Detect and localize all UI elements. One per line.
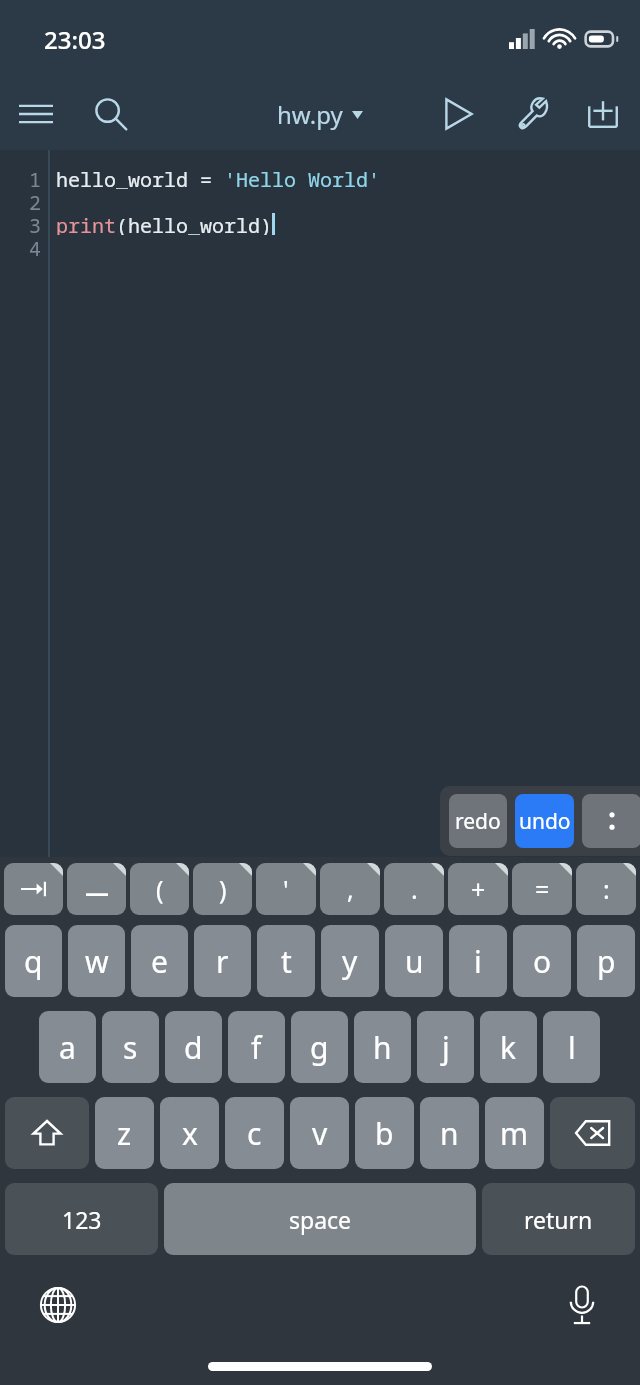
staticText: d [184,1027,203,1068]
staticText: 4 [29,235,41,258]
staticText: v [312,1113,328,1154]
button[interactable]: x [160,1097,219,1169]
staticText: + [471,872,486,906]
button[interactable]: + [448,863,508,915]
button[interactable] [4,863,63,915]
button[interactable]: y [321,925,379,997]
staticText: h [373,1027,392,1068]
staticText: : [603,872,610,906]
button[interactable]: f [228,1011,285,1083]
button[interactable]: i [449,925,507,997]
button[interactable]: Tools [502,85,560,143]
button[interactable]: c [225,1097,284,1169]
staticText: e [151,941,168,982]
staticText: q [24,941,43,982]
button[interactable]: Shift [5,1097,89,1169]
button[interactable] [67,863,126,915]
button[interactable]: undo [515,794,574,848]
button[interactable]: Run [430,85,488,143]
staticText: 1 [29,166,41,189]
button[interactable]: ( [130,863,189,915]
button[interactable]: Backspace [550,1097,635,1169]
button[interactable]: w [68,925,125,997]
staticText: 123 [62,1204,102,1235]
staticText: c [247,1113,262,1154]
staticText: undo [519,807,571,836]
button[interactable]: Change language [30,1277,86,1333]
staticText: 3 [29,212,41,235]
button[interactable]: s [102,1011,159,1083]
button[interactable]: m [485,1097,544,1169]
staticText: g [310,1027,329,1068]
button[interactable]: , [320,863,380,915]
button[interactable]: hw.py [277,98,363,131]
staticText: hw.py [277,98,343,131]
button[interactable]: Search [82,85,140,143]
staticText: f [251,1027,262,1068]
staticText: x [182,1113,198,1154]
button[interactable]: e [131,925,188,997]
staticText: b [375,1113,394,1154]
button[interactable]: r [194,925,251,997]
staticText: 23:03 [44,23,106,56]
staticText: 2 [29,189,41,212]
button[interactable]: d [165,1011,222,1083]
staticText: l [568,1027,576,1068]
button[interactable]: v [290,1097,349,1169]
staticText: p [597,941,616,982]
button[interactable]: Voice input [554,1277,610,1333]
staticText: space [289,1204,352,1235]
button[interactable]: g [291,1011,348,1083]
button[interactable]: space [164,1183,476,1255]
staticText: r [216,941,229,982]
staticText: j [442,1027,450,1068]
button[interactable]: a [39,1011,96,1083]
staticText: ) [219,872,227,906]
staticText: ( [156,872,164,906]
staticText: k [500,1027,517,1068]
button[interactable]: q [5,925,62,997]
button[interactable]: . [384,863,444,915]
staticText: , [347,872,354,906]
staticText: = [535,872,550,906]
button[interactable]: t [257,925,315,997]
staticText: ' [283,872,289,906]
staticText: o [533,941,552,982]
button[interactable]: ) [193,863,252,915]
staticText: n [440,1113,459,1154]
staticText: s [123,1027,138,1068]
button[interactable]: : [576,863,636,915]
button[interactable]: return [482,1183,635,1255]
button[interactable]: z [95,1097,154,1169]
button[interactable]: Menu [8,86,64,142]
button[interactable]: o [513,925,571,997]
button[interactable]: j [417,1011,474,1083]
staticText: hello_world = 'Hello World' [56,166,380,189]
button[interactable]: 123 [5,1183,158,1255]
button[interactable]: k [480,1011,537,1083]
button[interactable]: u [385,925,443,997]
staticText: m [500,1113,529,1154]
button[interactable]: p [577,925,635,997]
staticText: . [411,872,418,906]
button[interactable]: l [543,1011,600,1083]
staticText: redo [455,807,501,836]
button[interactable]: = [512,863,572,915]
staticText: z [117,1113,132,1154]
staticText: return [524,1204,593,1235]
button[interactable]: h [354,1011,411,1083]
staticText: print(hello_world) [56,212,272,235]
button[interactable]: b [355,1097,414,1169]
button[interactable]: More [582,794,640,848]
staticText: y [342,941,358,982]
button[interactable]: n [420,1097,479,1169]
staticText: w [85,941,109,982]
staticText: u [405,941,424,982]
button[interactable]: ' [256,863,316,915]
staticText: a [59,1027,76,1068]
staticText: t [281,941,292,982]
button[interactable]: New file [574,85,632,143]
staticText: i [474,941,482,982]
button[interactable]: redo [449,794,507,848]
